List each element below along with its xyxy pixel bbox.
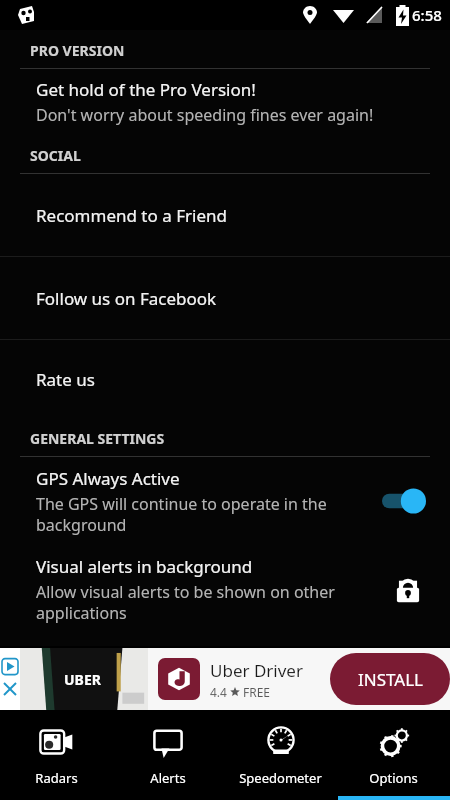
staticText: Speedometer <box>239 769 322 787</box>
staticText: PRO VERSION <box>30 41 125 60</box>
button[interactable]: Alerts <box>112 712 224 800</box>
button[interactable]: GPS Always Active toggle <box>380 487 428 515</box>
staticText: Radars <box>35 769 78 787</box>
staticText: INSTALL <box>358 668 423 691</box>
button[interactable]: UBER <box>0 648 450 710</box>
button[interactable]: Follow us on Facebook <box>0 257 450 339</box>
button[interactable]: GPS Always Active <box>0 457 450 545</box>
button[interactable]: Options <box>337 712 450 800</box>
button[interactable]: Radars <box>0 712 112 800</box>
staticText: 4.4 <box>210 684 227 700</box>
staticText: Allow visual alerts to be shown on other… <box>36 581 335 624</box>
staticText: Follow us on Facebook <box>36 287 217 310</box>
button[interactable]: Rate us <box>0 340 450 418</box>
staticText: Alerts <box>150 769 186 787</box>
staticText: Don't worry about speeding fines ever ag… <box>36 104 374 126</box>
staticText: Recommend to a Friend <box>36 204 227 227</box>
button[interactable]: Locked, Pro feature <box>388 569 428 609</box>
staticText: Visual alerts in background <box>36 555 253 578</box>
staticText: 6:58 <box>412 5 442 25</box>
button[interactable]: INSTALL <box>330 653 450 705</box>
staticText: Rate us <box>36 368 95 391</box>
button[interactable]: Get hold of the Pro Version! <box>0 69 450 135</box>
button[interactable]: Speedometer <box>224 712 337 800</box>
staticText: Options <box>369 769 418 787</box>
staticText: SOCIAL <box>30 146 81 165</box>
staticText: UBER <box>64 670 101 689</box>
staticText: The GPS will continue to operate in the … <box>36 493 327 536</box>
staticText: Uber Driver <box>210 659 303 682</box>
staticText: GENERAL SETTINGS <box>30 429 165 448</box>
button[interactable]: Recommend to a Friend <box>0 174 450 256</box>
staticText: FREE <box>243 684 271 700</box>
staticText: Get hold of the Pro Version! <box>36 78 256 101</box>
button[interactable]: Visual alerts in background <box>0 545 450 633</box>
staticText: GPS Always Active <box>36 467 180 490</box>
